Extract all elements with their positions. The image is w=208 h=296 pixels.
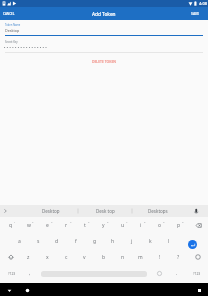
staticText: .: [176, 270, 178, 277]
button[interactable]: o: [150, 217, 169, 233]
button[interactable]: Home: [21, 284, 33, 296]
staticText: d: [55, 238, 59, 245]
staticText: 6: [107, 220, 109, 223]
staticText: l: [168, 238, 170, 245]
staticText: n: [121, 254, 125, 261]
staticText: f: [75, 238, 77, 245]
button[interactable]: CANCEL: [0, 7, 20, 20]
staticText: Desk top: [96, 208, 115, 214]
button[interactable]: s: [29, 233, 48, 249]
staticText: v: [83, 254, 86, 261]
staticText: ,: [29, 270, 31, 277]
staticText: Token Name: [5, 23, 21, 27]
staticText: SAVE: [191, 11, 200, 16]
staticText: ?123: [8, 271, 16, 276]
staticText: h: [111, 238, 115, 245]
staticText: q: [9, 222, 13, 229]
button[interactable]: h: [103, 233, 122, 249]
staticText: 1: [14, 220, 16, 223]
button[interactable]: m: [131, 249, 150, 265]
staticText: Desktop: [42, 208, 60, 214]
staticText: s: [37, 238, 40, 245]
staticText: i: [140, 222, 142, 229]
button[interactable]: DELETE TOKEN: [88, 57, 120, 66]
staticText: e: [46, 222, 49, 229]
staticText: r: [65, 222, 68, 229]
staticText: j: [131, 238, 133, 245]
button[interactable]: Emoji: [150, 265, 168, 281]
button[interactable]: ,: [22, 265, 38, 281]
button[interactable]: y: [94, 217, 113, 233]
staticText: k: [149, 238, 152, 245]
staticText: 5: [88, 220, 90, 223]
staticText: Add Token: [92, 11, 116, 17]
staticText: ?: [177, 254, 180, 261]
staticText: w: [27, 222, 31, 229]
staticText: Desktop: [5, 28, 20, 33]
button[interactable]: e: [38, 217, 57, 233]
staticText: b: [102, 254, 106, 261]
staticText: ?123: [193, 271, 201, 276]
staticText: m: [138, 254, 143, 261]
staticText: a: [18, 238, 21, 245]
staticText: y: [102, 222, 105, 229]
staticText: !: [159, 254, 161, 261]
staticText: 0: [182, 220, 184, 223]
button[interactable]: j: [122, 233, 141, 249]
button[interactable]: Desktops: [133, 205, 183, 217]
staticText: c: [65, 254, 68, 261]
staticText: 9: [163, 220, 165, 223]
button[interactable]: p: [169, 217, 188, 233]
staticText: Desktops: [148, 208, 168, 214]
staticText: 7: [126, 220, 128, 223]
staticText: z: [27, 254, 30, 261]
staticText: 3: [51, 220, 53, 223]
staticText: DELETE TOKEN: [92, 59, 116, 64]
button[interactable]: ?123: [186, 265, 208, 281]
button[interactable]: u: [113, 217, 132, 233]
button[interactable]: w: [19, 217, 38, 233]
staticText: p: [177, 222, 181, 229]
staticText: x: [46, 254, 49, 261]
button[interactable]: Enter: [182, 233, 203, 249]
staticText: o: [158, 222, 162, 229]
button[interactable]: v: [75, 249, 94, 265]
button[interactable]: Backspace: [188, 217, 208, 233]
staticText: 4:08: [199, 1, 207, 6]
button[interactable]: Back: [3, 284, 15, 296]
button[interactable]: Desk top: [78, 205, 132, 217]
button[interactable]: l: [159, 233, 178, 249]
button[interactable]: z: [19, 249, 38, 265]
staticText: Secret Key: [5, 40, 18, 44]
staticText: g: [93, 238, 97, 245]
button[interactable]: Desktop: [23, 205, 79, 217]
staticText: u: [121, 222, 125, 229]
button[interactable]: SAVE: [188, 7, 208, 20]
button[interactable]: i: [131, 217, 150, 233]
button[interactable]: a: [10, 233, 29, 249]
button[interactable]: g: [85, 233, 104, 249]
button[interactable]: f: [66, 233, 85, 249]
button[interactable]: Shift: [1, 249, 20, 265]
button[interactable]: n: [113, 249, 132, 265]
button[interactable]: x: [38, 249, 57, 265]
button[interactable]: ?123: [1, 265, 22, 281]
button[interactable]: c: [57, 249, 76, 265]
button[interactable]: d: [47, 233, 66, 249]
staticText: 2: [32, 220, 34, 223]
staticText: 4: [70, 220, 72, 223]
button[interactable]: k: [141, 233, 160, 249]
staticText: CANCEL: [3, 12, 15, 16]
button[interactable]: ?: [169, 249, 188, 265]
staticText: t: [84, 222, 86, 229]
button[interactable]: Emoji: [188, 249, 208, 265]
button[interactable]: !: [150, 249, 169, 265]
button[interactable]: b: [94, 249, 113, 265]
button[interactable]: r: [57, 217, 76, 233]
button[interactable]: Space: [38, 265, 150, 281]
button[interactable]: Recents: [193, 284, 205, 296]
button[interactable]: q: [1, 217, 20, 233]
button[interactable]: t: [75, 217, 94, 233]
staticText: 8: [144, 220, 146, 223]
